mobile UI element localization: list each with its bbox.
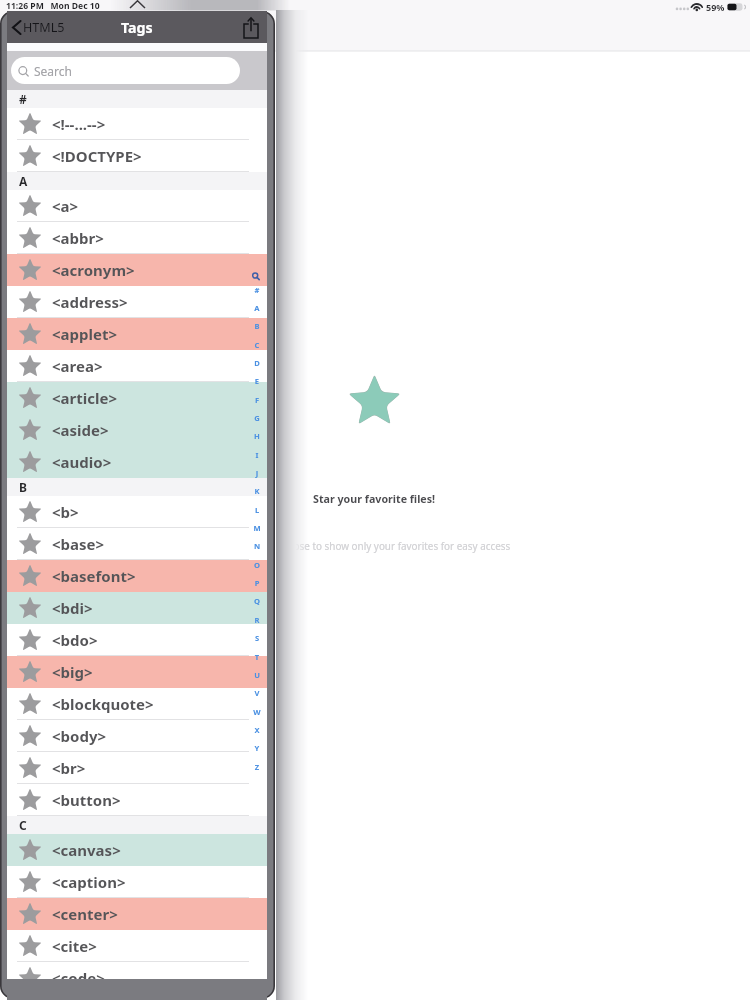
staticText: K: [251, 486, 263, 496]
button[interactable]: Search: [11, 57, 240, 84]
button[interactable]: <a>: [7, 190, 267, 222]
button[interactable]: Alphabet index: [7, 11, 267, 1000]
staticText: D: [251, 358, 263, 368]
staticText: O: [251, 560, 263, 570]
button[interactable]: <applet>: [7, 318, 267, 350]
button[interactable]: <aside>: [7, 414, 267, 446]
staticText: E: [251, 376, 263, 386]
staticText: <a>: [52, 196, 79, 216]
staticText: <abbr>: [52, 228, 104, 248]
staticText: Q: [251, 596, 263, 606]
staticText: L: [251, 505, 263, 515]
staticText: <aside>: [52, 420, 109, 440]
staticText: <article>: [52, 388, 118, 408]
button[interactable]: <area>: [7, 350, 267, 382]
staticText: 11:26 PM Mon Dec 10: [6, 0, 100, 12]
staticText: H: [251, 431, 263, 441]
staticText: <basefont>: [52, 566, 136, 586]
staticText: 59%: [706, 1, 725, 13]
staticText: U: [251, 670, 263, 680]
staticText: <caption>: [52, 872, 126, 892]
button[interactable]: <address>: [7, 286, 267, 318]
staticText: <!DOCTYPE>: [52, 146, 142, 166]
staticText: <big>: [52, 662, 93, 682]
staticText: <area>: [52, 356, 103, 376]
staticText: Star your favorite files!: [313, 492, 436, 507]
staticText: <b>: [52, 502, 79, 522]
staticText: J: [251, 468, 263, 478]
staticText: P: [251, 578, 263, 588]
staticText: Search: [34, 63, 72, 79]
staticText: <bdi>: [52, 598, 93, 618]
button[interactable]: <article>: [7, 382, 267, 414]
staticText: S: [251, 633, 263, 643]
button[interactable]: <code>: [7, 962, 267, 994]
staticText: #: [251, 285, 263, 295]
staticText: Y: [251, 743, 263, 753]
button[interactable]: <cite>: [7, 930, 267, 962]
staticText: A: [19, 173, 28, 189]
staticText: C: [251, 340, 263, 350]
staticText: <code>: [52, 968, 105, 988]
staticText: <audio>: [52, 452, 112, 472]
staticText: Tags: [121, 18, 153, 37]
staticText: B: [19, 479, 27, 495]
staticText: R: [251, 615, 263, 625]
staticText: A: [251, 303, 263, 313]
staticText: W: [251, 707, 263, 717]
staticText: N: [251, 541, 263, 551]
button[interactable]: <!--...-->: [7, 108, 267, 140]
staticText: X: [251, 725, 263, 735]
staticText: I: [251, 450, 263, 460]
button[interactable]: <b>: [7, 496, 267, 528]
staticText: <address>: [52, 292, 128, 312]
staticText: T: [251, 652, 263, 662]
staticText: <acronym>: [52, 260, 135, 280]
staticText: B: [251, 321, 263, 331]
button[interactable]: HTML5: [10, 19, 65, 36]
button[interactable]: <button>: [7, 784, 267, 816]
staticText: <body>: [52, 726, 107, 746]
button[interactable]: <!DOCTYPE>: [7, 140, 267, 172]
button[interactable]: <canvas>: [7, 834, 267, 866]
staticText: <br>: [52, 758, 86, 778]
button[interactable]: <blockquote>: [7, 688, 267, 720]
staticText: <!--...-->: [52, 114, 106, 134]
staticText: <applet>: [52, 324, 118, 344]
staticText: V: [251, 688, 263, 698]
staticText: HTML5: [23, 19, 65, 36]
button[interactable]: <center>: [7, 898, 267, 930]
button[interactable]: <basefont>: [7, 560, 267, 592]
button[interactable]: <br>: [7, 752, 267, 784]
staticText: <center>: [52, 904, 118, 924]
button[interactable]: <bdi>: [7, 592, 267, 624]
button[interactable]: <base>: [7, 528, 267, 560]
button[interactable]: <big>: [7, 656, 267, 688]
staticText: <blockquote>: [52, 694, 154, 714]
staticText: Z: [251, 762, 263, 772]
staticText: <button>: [52, 790, 121, 810]
button[interactable]: <bdo>: [7, 624, 267, 656]
staticText: <base>: [52, 534, 105, 554]
button[interactable]: <acronym>: [7, 254, 267, 286]
button[interactable]: <caption>: [7, 866, 267, 898]
staticText: #: [19, 91, 27, 107]
button[interactable]: <body>: [7, 720, 267, 752]
staticText: C: [19, 817, 27, 833]
staticText: <cite>: [52, 936, 97, 956]
staticText: G: [251, 413, 263, 423]
button[interactable]: Share: [238, 14, 264, 40]
staticText: F: [251, 395, 263, 405]
button[interactable]: <audio>: [7, 446, 267, 478]
staticText: <canvas>: [52, 840, 121, 860]
staticText: <bdo>: [52, 630, 98, 650]
staticText: You can choose to show only your favorit…: [238, 539, 511, 552]
button[interactable]: <abbr>: [7, 222, 267, 254]
staticText: M: [251, 523, 263, 533]
